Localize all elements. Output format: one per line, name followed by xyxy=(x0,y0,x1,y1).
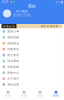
button[interactable]: 帮助中心 xyxy=(0,70,64,76)
staticText: › xyxy=(61,76,62,81)
button[interactable]: 发现 xyxy=(16,88,32,99)
staticText: › xyxy=(61,58,62,64)
staticText: 地址管理 xyxy=(7,53,19,57)
staticText: 我的钱包 xyxy=(7,42,19,45)
staticText: 消息通知 xyxy=(7,59,19,63)
staticText: 在线客服 xyxy=(7,65,19,68)
staticText: 首页 xyxy=(5,94,11,97)
staticText: › xyxy=(61,35,62,40)
staticText: ᯿ ᯤ ▮ xyxy=(56,0,62,4)
staticText: 我的订单 xyxy=(7,30,19,33)
button[interactable]: 关于我们 xyxy=(0,76,64,82)
staticText: 消息 xyxy=(37,94,43,97)
staticText: 发现 xyxy=(21,94,27,97)
staticText: 我的 xyxy=(53,94,59,97)
button[interactable]: 系统设置 xyxy=(0,82,64,87)
staticText: 系统设置 xyxy=(7,83,19,86)
staticText: › xyxy=(61,29,62,34)
staticText: 领取专属优惠 › xyxy=(40,24,60,28)
staticText: › xyxy=(61,70,62,75)
staticText: 我的收藏 xyxy=(7,36,19,39)
button[interactable]: 消息 xyxy=(32,88,48,99)
button[interactable]: 消息通知 xyxy=(0,58,64,64)
button[interactable]: 地址管理 xyxy=(0,52,64,58)
staticText: › xyxy=(61,82,62,87)
staticText: 帮助中心 xyxy=(7,71,19,74)
button[interactable]: 我的收藏 xyxy=(0,34,64,40)
button[interactable]: 我的钱包 xyxy=(0,40,64,46)
staticText: › xyxy=(61,64,62,69)
staticText: ID:8812345 xyxy=(13,14,31,17)
staticText: › xyxy=(61,52,62,58)
button[interactable]: 在线客服 xyxy=(0,64,64,70)
staticText: 优惠券包 xyxy=(7,47,19,51)
button[interactable]: 我的 xyxy=(48,88,64,99)
staticText: 开通会员 xyxy=(3,25,15,28)
staticText: › xyxy=(61,41,62,46)
button[interactable]: 首页 xyxy=(0,88,16,99)
button[interactable]: 优惠券包 xyxy=(0,46,64,52)
staticText: 我的 xyxy=(28,4,36,9)
staticText: 用户昵称 xyxy=(16,10,28,13)
button[interactable]: 我的订单 xyxy=(0,28,64,34)
button[interactable]: 开通会员 xyxy=(0,24,64,28)
staticText: › xyxy=(61,46,62,52)
staticText: 关于我们 xyxy=(7,77,19,80)
staticText: 9:41 xyxy=(2,0,9,4)
